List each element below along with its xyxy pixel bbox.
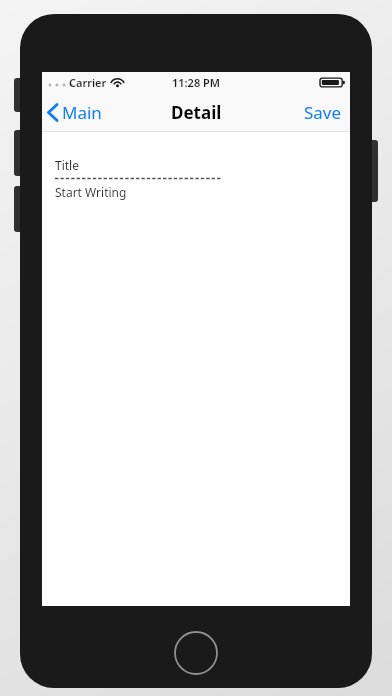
- staticText: Save: [304, 101, 342, 124]
- staticText: Start Writing: [55, 184, 127, 200]
- staticText: 11:28 PM: [172, 75, 221, 90]
- staticText: Main: [62, 101, 102, 124]
- staticText: Detail: [171, 101, 222, 124]
- button[interactable]: Title: [55, 157, 79, 173]
- button[interactable]: Start Writing: [55, 184, 127, 200]
- staticText: Title: [55, 157, 79, 173]
- button[interactable]: Main: [42, 93, 112, 132]
- button[interactable]: Save: [296, 93, 350, 132]
- button[interactable]: Home: [173, 630, 219, 676]
- staticText: Carrier: [69, 75, 107, 90]
